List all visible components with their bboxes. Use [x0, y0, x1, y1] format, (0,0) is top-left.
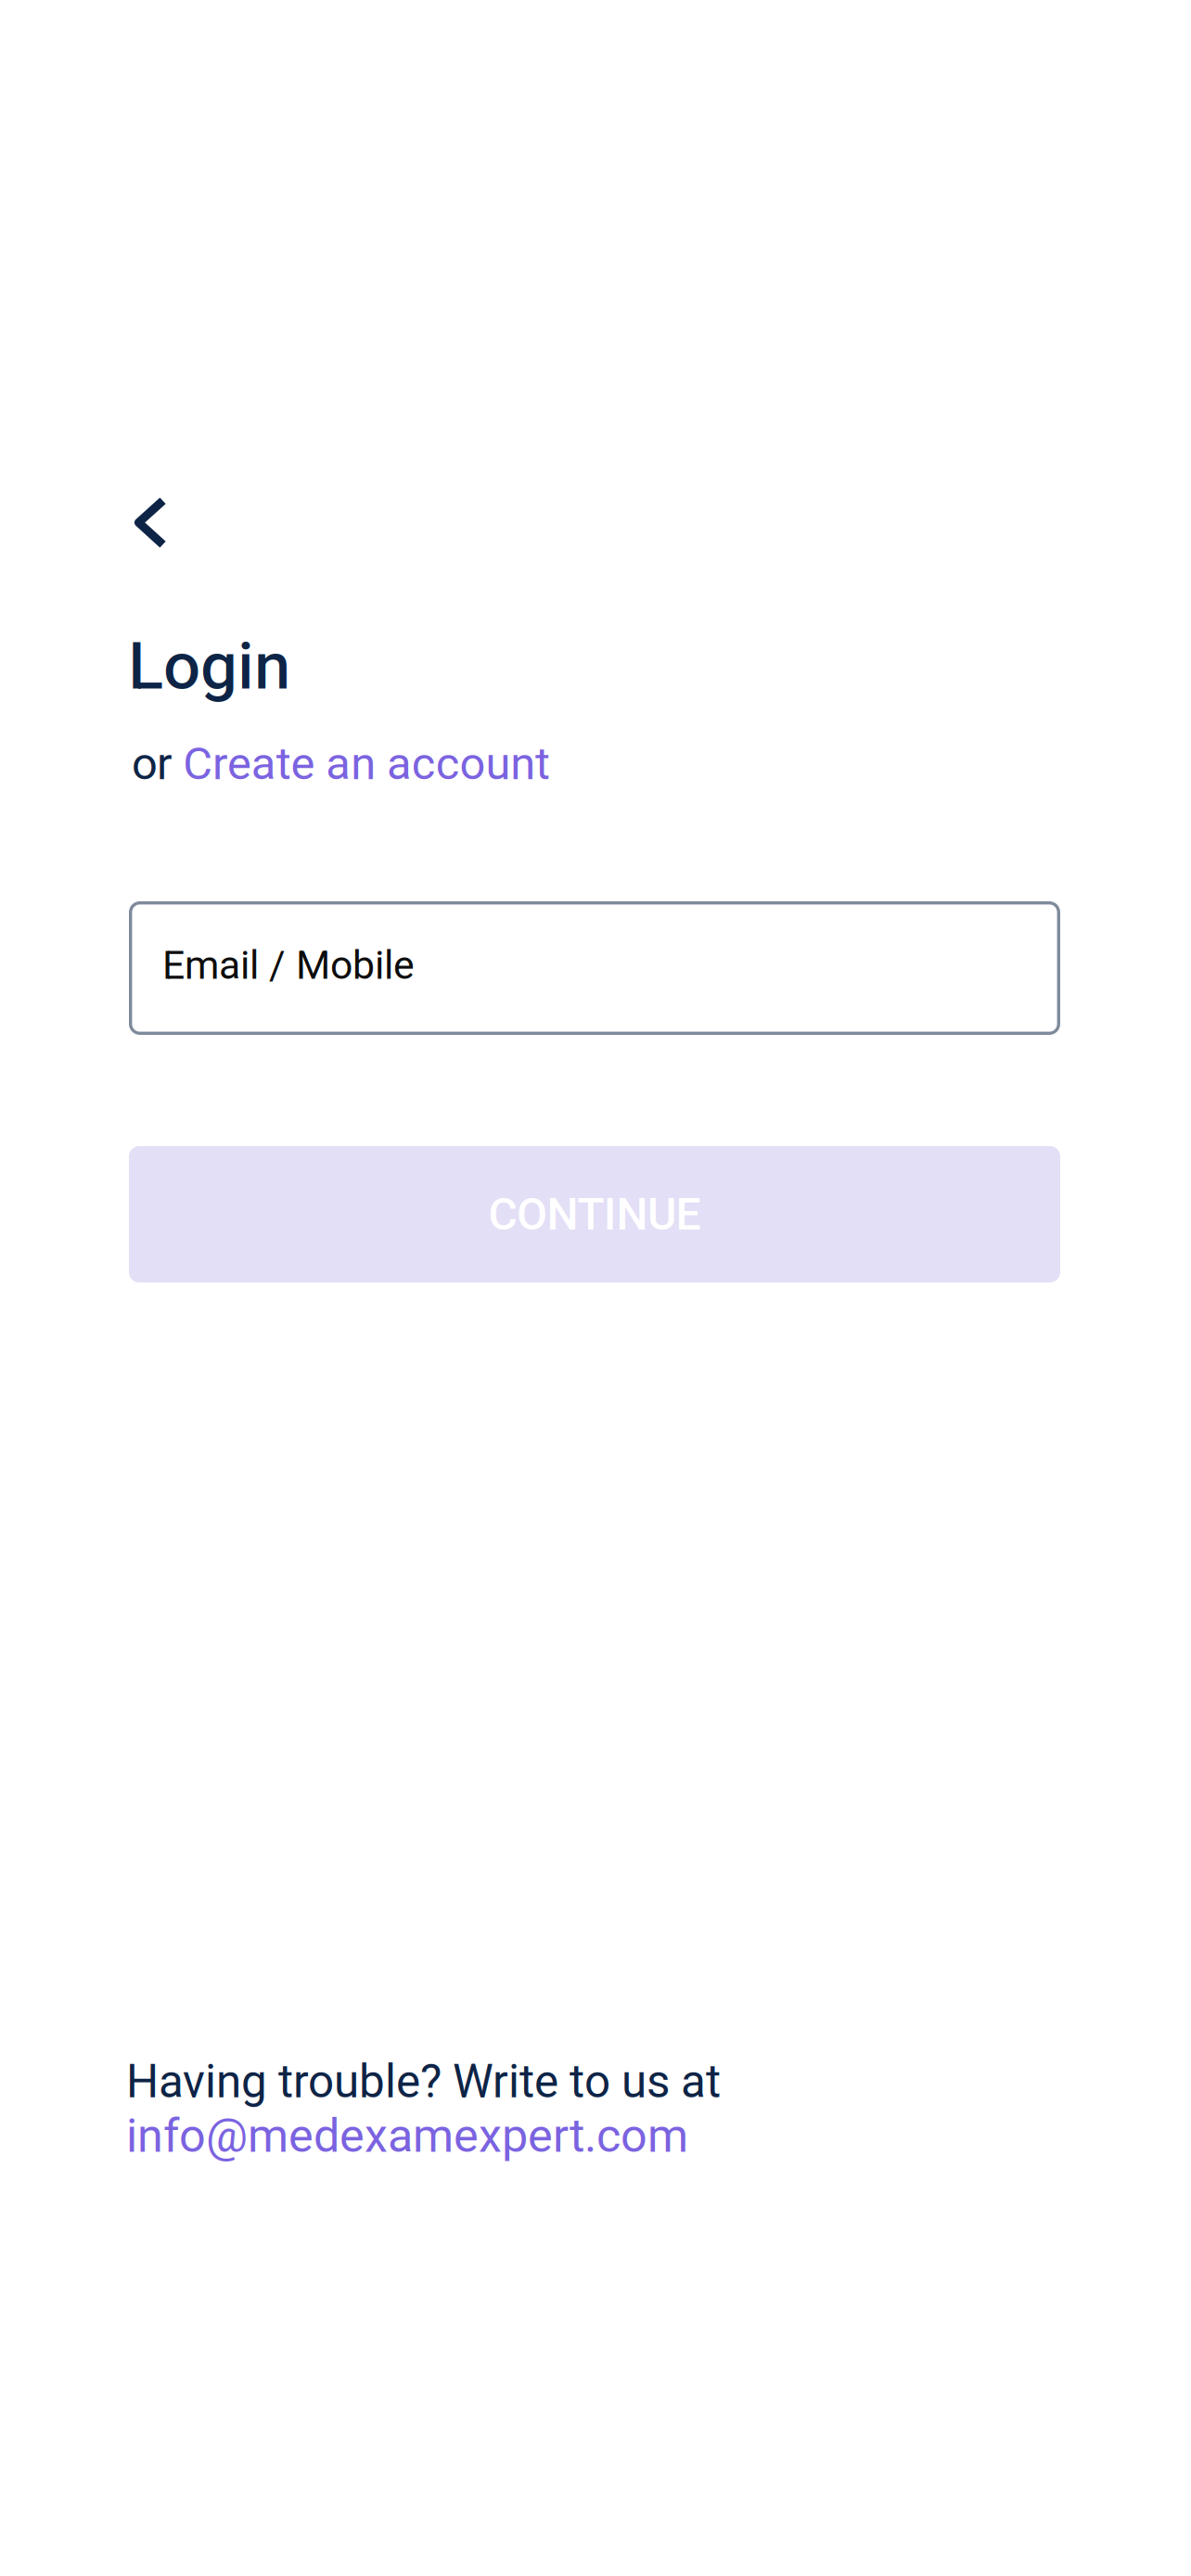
- button[interactable]: CONTINUE: [129, 1146, 1060, 1282]
- button[interactable]: info@medexamexpert.com: [126, 2108, 688, 2163]
- staticText: Create an account: [183, 737, 550, 790]
- button[interactable]: Email / Mobile: [129, 901, 1060, 1035]
- staticText: info@medexamexpert.com: [126, 2108, 688, 2163]
- button[interactable]: Back: [92, 454, 205, 590]
- staticText: or: [132, 737, 183, 790]
- staticText: Login: [128, 628, 290, 705]
- staticText: Having trouble? Write to us at: [126, 2055, 721, 2108]
- staticText: Email / Mobile: [162, 942, 415, 988]
- staticText: CONTINUE: [488, 1188, 701, 1240]
- button[interactable]: Create an account: [183, 737, 550, 790]
